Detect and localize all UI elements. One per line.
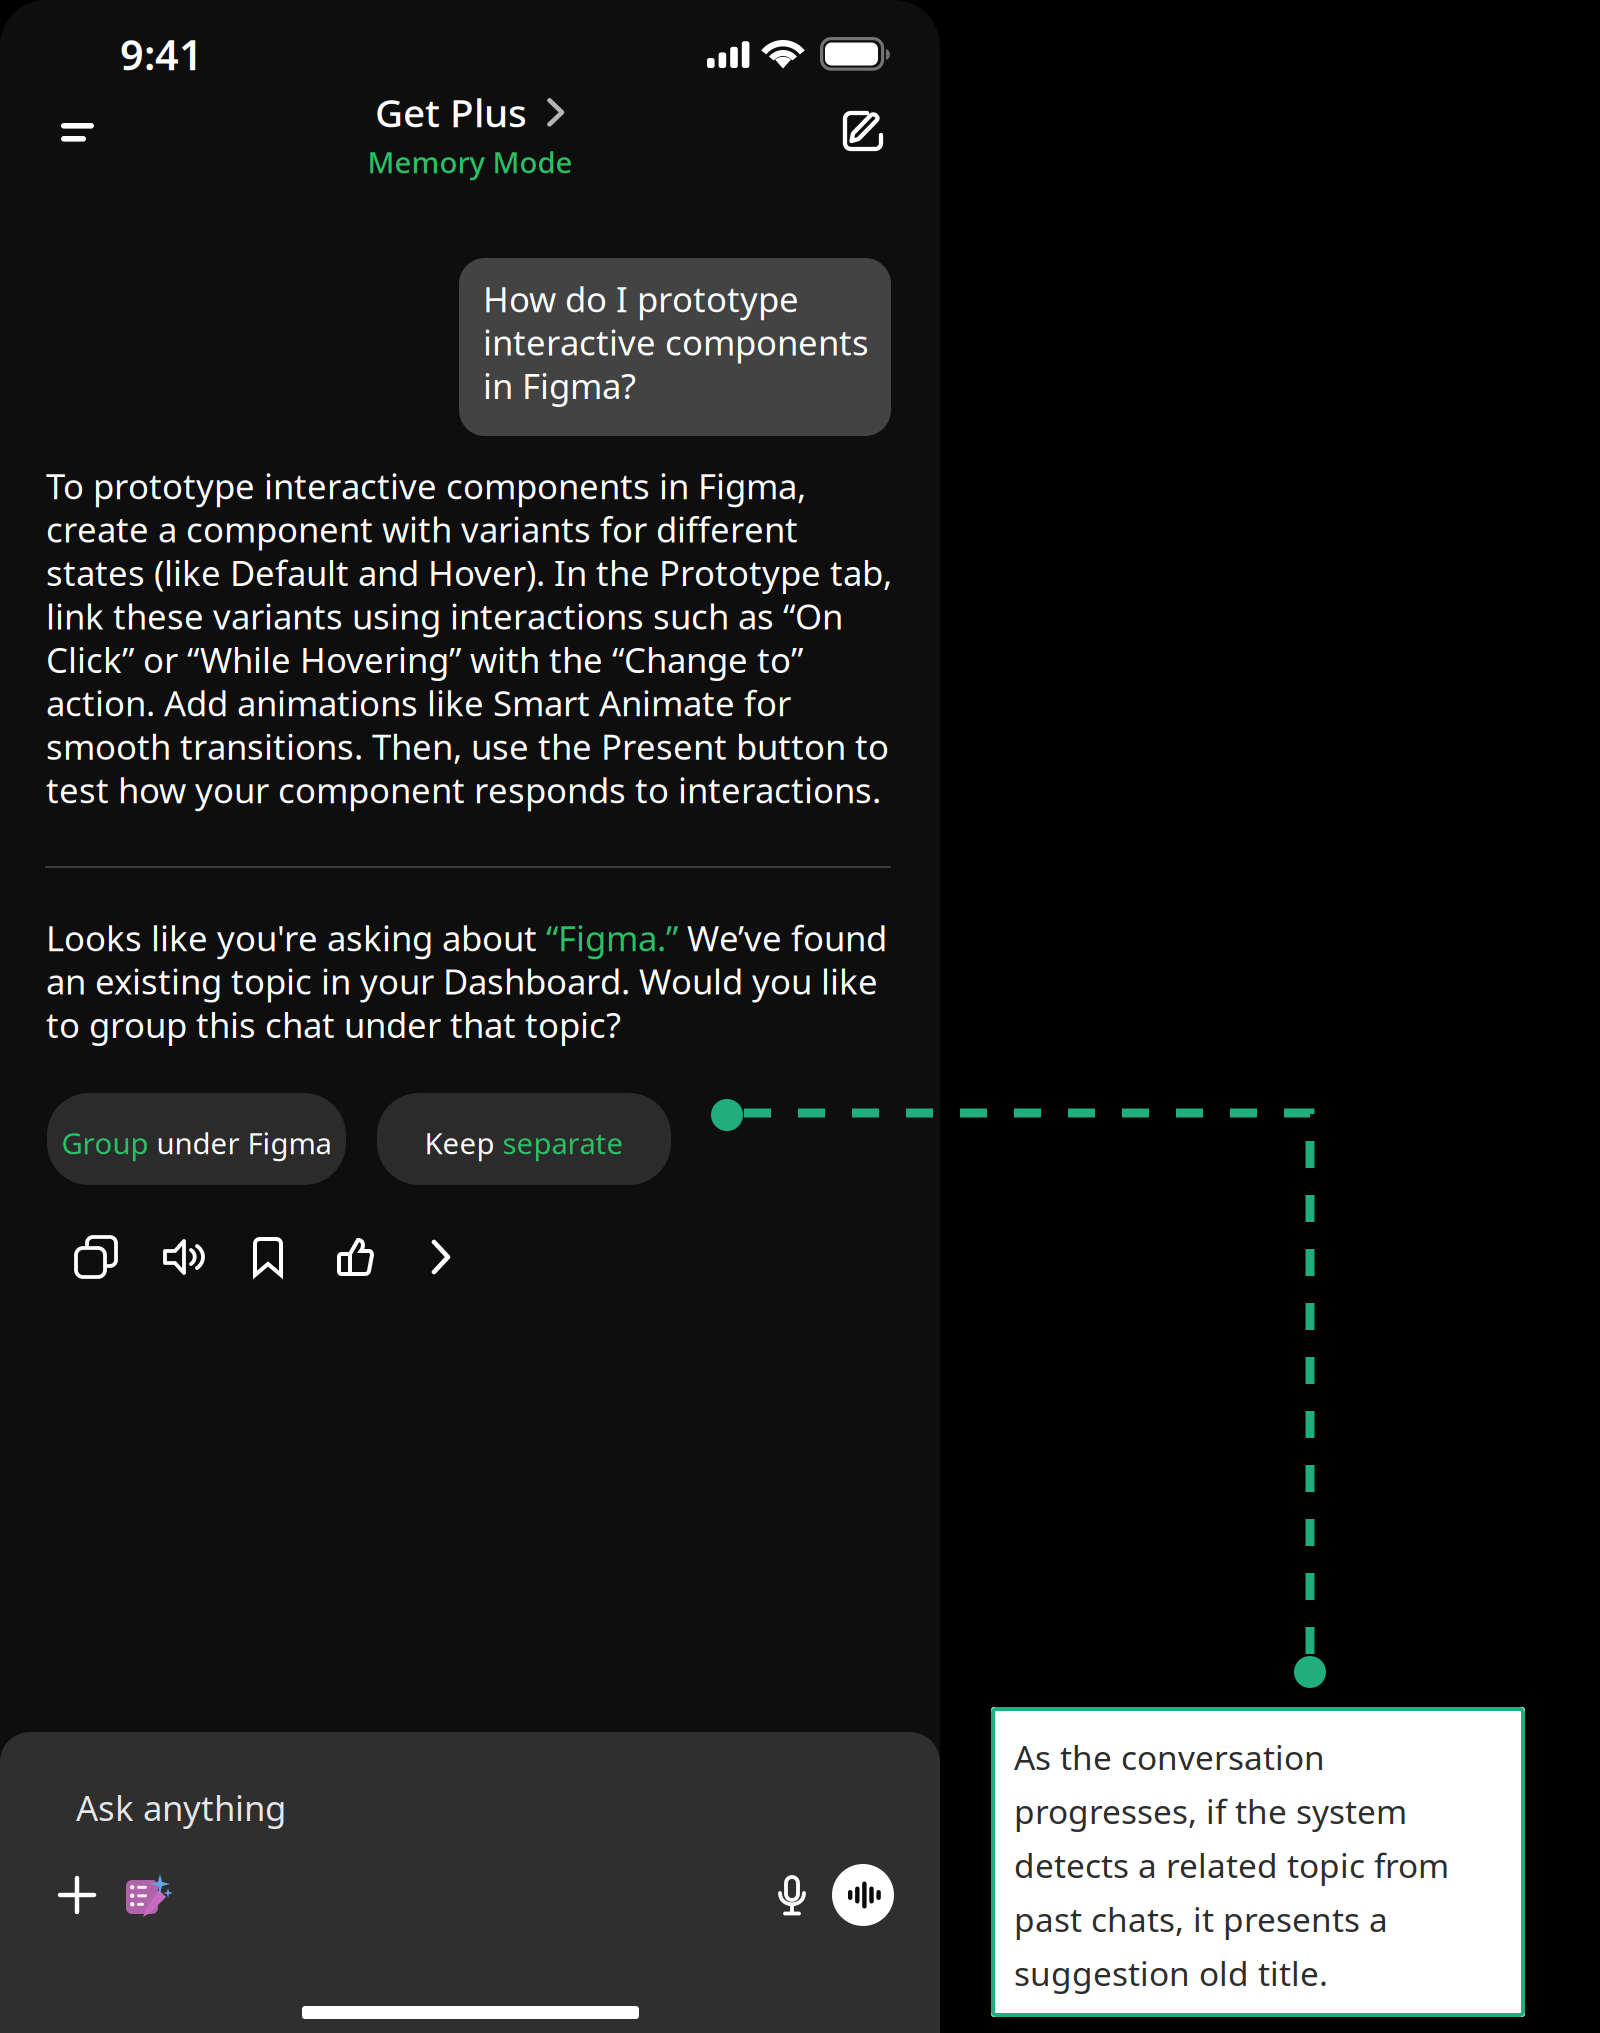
staticText: Looks like you're asking about “Figma.” … [46,916,887,1046]
button[interactable]: Group under Figma [47,1093,346,1185]
button[interactable]: Get Plus [375,86,565,139]
staticText: To prototype interactive components in F… [46,464,892,811]
staticText: How do I prototype interactive component… [483,277,869,407]
staticText: Get Plus [375,86,527,139]
staticText: Memory Mode [367,142,572,182]
button[interactable]: Keep separate [377,1093,671,1185]
button[interactable]: Add attachment [46,1864,108,1926]
button[interactable]: Read aloud [139,1214,225,1300]
button[interactable]: More [399,1214,485,1300]
staticText: 9:41 [120,26,203,82]
staticText: Ask anything [76,1784,286,1831]
button[interactable]: Good response [313,1214,399,1300]
button[interactable]: Tools [114,1862,180,1928]
button[interactable]: New chat [815,83,911,179]
staticText: Keep separate [424,1123,623,1163]
staticText: As the conversation progresses, if the s… [1014,1730,1449,2000]
button[interactable]: Bookmark [225,1214,311,1300]
staticText: Group under Figma [61,1123,331,1163]
button[interactable]: Copy [53,1214,139,1300]
button[interactable]: Voice mode [822,1854,904,1936]
button[interactable]: Menu [17,87,105,175]
button[interactable]: Dictate [761,1864,823,1926]
